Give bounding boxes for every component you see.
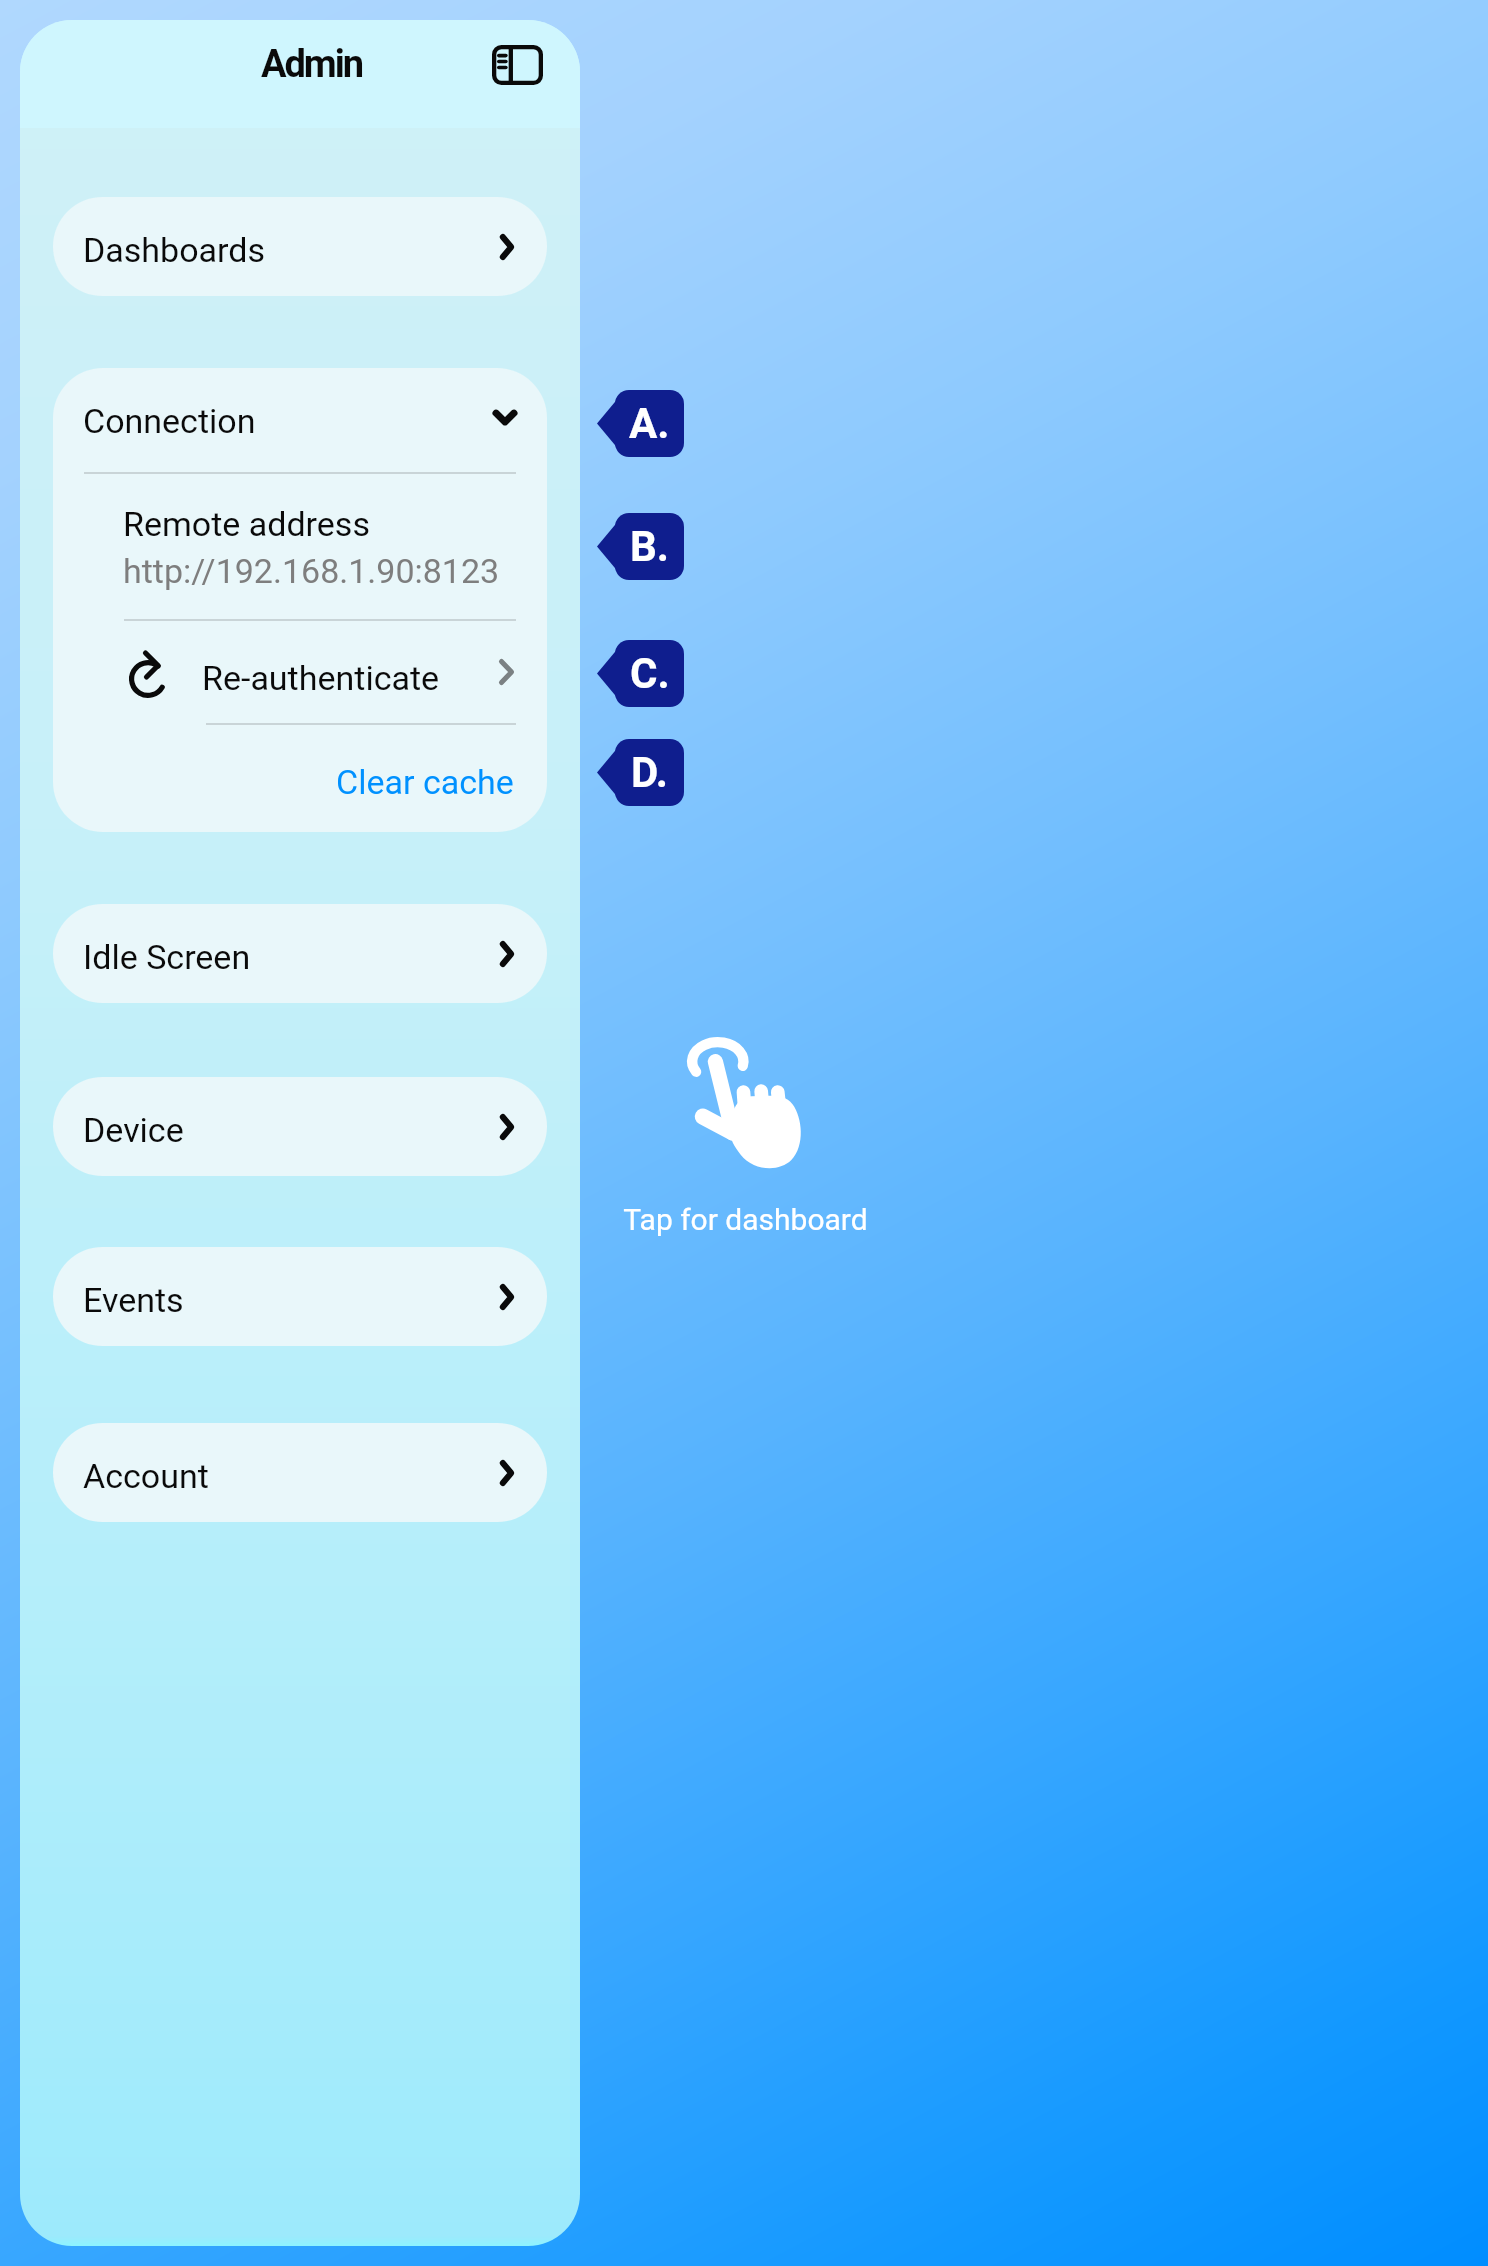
button[interactable]: Tap for dashboard	[610, 1030, 880, 1245]
button[interactable]: Clear cache	[53, 725, 547, 832]
staticText: D.	[631, 748, 669, 797]
staticText: Clear cache	[336, 762, 514, 802]
button[interactable]: Events	[53, 1247, 547, 1346]
staticText: C.	[630, 649, 670, 698]
button[interactable]: Re-authenticate	[53, 621, 547, 723]
button[interactable]: Idle Screen	[53, 904, 547, 1003]
staticText: Connection	[83, 401, 256, 441]
other: Tap for dashboard	[687, 1037, 809, 1173]
button[interactable]: Connection	[53, 368, 547, 467]
staticText: Idle Screen	[83, 937, 251, 977]
staticText: Dashboards	[83, 230, 265, 270]
button[interactable]: Account	[53, 1423, 547, 1522]
button[interactable]: Toggle sidebar	[481, 29, 553, 101]
staticText: Account	[83, 1456, 209, 1496]
button[interactable]: Device	[53, 1077, 547, 1176]
staticText: A.	[629, 399, 670, 448]
staticText: Device	[83, 1110, 184, 1150]
staticText: Re-authenticate	[202, 658, 440, 698]
staticText: B.	[630, 522, 670, 571]
staticText: Tap for dashboard	[623, 1202, 868, 1237]
staticText: http://192.168.1.90:8123	[123, 551, 500, 591]
button[interactable]: Dashboards	[53, 197, 547, 296]
staticText: Events	[83, 1280, 184, 1320]
staticText: Admin	[261, 42, 362, 87]
staticText: Remote address	[123, 504, 370, 544]
